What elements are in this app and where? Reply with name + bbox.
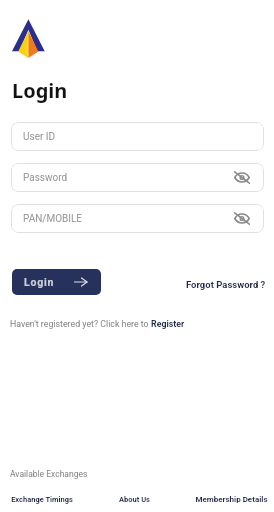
- staticText: Password: [23, 172, 68, 184]
- button[interactable]: Password: [11, 163, 264, 192]
- staticText: PAN/MOBILE: [23, 213, 83, 225]
- button[interactable]: Forgot Password ?: [186, 279, 266, 290]
- other: Show password: [234, 172, 250, 183]
- staticText: Membership Details: [195, 495, 268, 504]
- other: Show password: [234, 213, 250, 224]
- staticText: User ID: [23, 131, 56, 143]
- staticText: About Us: [119, 495, 150, 504]
- button[interactable]: Register: [151, 319, 185, 329]
- button[interactable]: About Us: [119, 495, 150, 504]
- staticText: Login: [12, 77, 68, 104]
- button[interactable]: User ID: [11, 122, 264, 151]
- button[interactable]: Membership Details: [195, 495, 268, 504]
- button[interactable]: PAN/MOBILE: [11, 204, 264, 233]
- button[interactable]: Exchange Timings: [11, 495, 73, 504]
- staticText: Haven't registered yet? Click here to: [10, 319, 151, 329]
- button[interactable]: Login: [12, 269, 101, 295]
- staticText: Exchange Timings: [11, 495, 73, 504]
- staticText: Available Exchanges: [10, 469, 88, 479]
- staticText: Login: [24, 276, 55, 288]
